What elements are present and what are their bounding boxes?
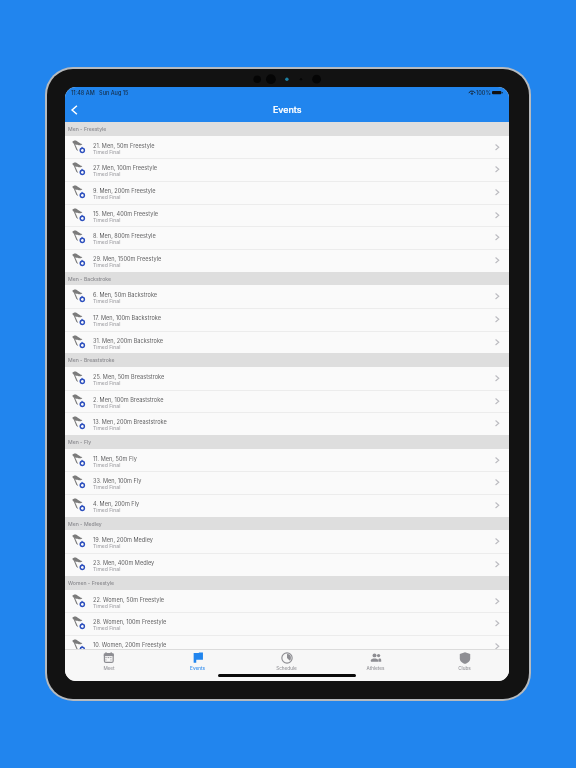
staticText: Timed Final	[93, 462, 121, 468]
staticText: Timed Final	[93, 217, 121, 223]
button[interactable]: 28. Women, 100m Freestyle	[65, 612, 509, 635]
button[interactable]: 33. Men, 100m Fly	[65, 471, 509, 494]
button[interactable]: 15. Men, 400m Freestyle	[65, 204, 509, 226]
staticText: Meet	[103, 665, 115, 671]
staticText: 100%	[476, 90, 491, 97]
staticText: Timed Final	[93, 403, 121, 409]
staticText: 15. Men, 400m Freestyle	[93, 211, 159, 218]
staticText: Timed Final	[93, 344, 121, 350]
staticText: 13. Men, 200m Breaststroke	[93, 419, 167, 426]
staticText: 2. Men, 100m Breaststroke	[93, 397, 164, 404]
button[interactable]: 2. Men, 100m Breaststroke	[65, 390, 509, 412]
button[interactable]: 10. Women, 200m Freestyle	[65, 635, 509, 649]
staticText: Timed Final	[93, 262, 121, 268]
staticText: Women - Freestyle	[68, 580, 115, 586]
button[interactable]: 8. Men, 800m Freestyle	[65, 226, 509, 249]
staticText: 17. Men, 100m Backstroke	[93, 315, 161, 322]
button[interactable]: 27. Men, 100m Freestyle	[65, 158, 509, 181]
staticText: 11:48 AM Sun Aug 15	[71, 90, 129, 97]
button[interactable]: Athletes	[331, 649, 420, 681]
staticText: 8. Men, 800m Freestyle	[93, 233, 156, 240]
staticText: 31. Men, 200m Backstroke	[93, 338, 164, 345]
button[interactable]: Meet	[65, 649, 153, 681]
button[interactable]: 6. Men, 50m Backstroke	[65, 285, 509, 308]
button[interactable]: 19. Men, 200m Medley	[65, 530, 509, 553]
staticText: Athletes	[366, 665, 385, 671]
staticText: Timed Final	[93, 194, 121, 200]
staticText: Timed Final	[93, 380, 121, 386]
staticText: Timed Final	[93, 298, 121, 304]
button[interactable]: 23. Men, 400m Medley	[65, 553, 509, 576]
staticText: 33. Men, 100m Fly	[93, 478, 142, 485]
staticText: Men - Freestyle	[68, 126, 107, 132]
staticText: 22. Women, 50m Freestyle	[93, 597, 164, 604]
staticText: Schedule	[276, 665, 297, 671]
staticText: Timed Final	[93, 171, 121, 177]
button[interactable]: Back	[65, 99, 87, 122]
staticText: Men - Fly	[68, 439, 92, 445]
staticText: 23. Men, 400m Medley	[93, 560, 155, 567]
staticText: 6. Men, 50m Backstroke	[93, 292, 158, 299]
button[interactable]: 29. Men, 1500m Freestyle	[65, 249, 509, 272]
staticText: Men - Breaststroke	[68, 357, 115, 363]
button[interactable]: 25. Men, 50m Breaststroke	[65, 367, 509, 390]
staticText: 19. Men, 200m Medley	[93, 537, 153, 544]
staticText: Timed Final	[93, 425, 121, 431]
button[interactable]: 31. Men, 200m Backstroke	[65, 331, 509, 353]
staticText: Events	[190, 665, 205, 671]
staticText: 11. Men, 50m Fly	[93, 456, 137, 463]
button[interactable]: Schedule	[242, 649, 331, 681]
button[interactable]: 21. Men, 50m Freestyle	[65, 136, 509, 158]
staticText: 27. Men, 100m Freestyle	[93, 165, 158, 172]
button[interactable]: Events	[153, 649, 242, 681]
staticText: Timed Final	[93, 603, 121, 609]
staticText: 4. Men, 200m Fly	[93, 501, 140, 508]
staticText: 10. Women, 200m Freestyle	[93, 642, 167, 649]
button[interactable]: 22. Women, 50m Freestyle	[65, 590, 509, 612]
staticText: Timed Final	[93, 507, 121, 513]
staticText: Timed Final	[93, 239, 121, 245]
staticText: 28. Women, 100m Freestyle	[93, 619, 167, 626]
button[interactable]: 9. Men, 200m Freestyle	[65, 181, 509, 204]
button[interactable]: Clubs	[420, 649, 509, 681]
staticText: 29. Men, 1500m Freestyle	[93, 256, 162, 263]
staticText: 25. Men, 50m Breaststroke	[93, 374, 165, 381]
staticText: Timed Final	[93, 566, 121, 572]
staticText: Timed Final	[93, 543, 121, 549]
staticText: Timed Final	[93, 484, 121, 490]
staticText: Timed Final	[93, 625, 121, 631]
staticText: Timed Final	[93, 149, 121, 155]
staticText: Timed Final	[93, 321, 121, 327]
button[interactable]: 13. Men, 200m Breaststroke	[65, 412, 509, 435]
staticText: Events	[273, 104, 302, 115]
button[interactable]: 11. Men, 50m Fly	[65, 449, 509, 471]
staticText: 9. Men, 200m Freestyle	[93, 188, 156, 195]
staticText: Clubs	[458, 665, 471, 671]
staticText: Men - Medley	[68, 521, 102, 527]
staticText: Men - Backstroke	[68, 276, 111, 282]
button[interactable]: 4. Men, 200m Fly	[65, 494, 509, 517]
button[interactable]: 17. Men, 100m Backstroke	[65, 308, 509, 331]
staticText: 21. Men, 50m Freestyle	[93, 143, 155, 150]
